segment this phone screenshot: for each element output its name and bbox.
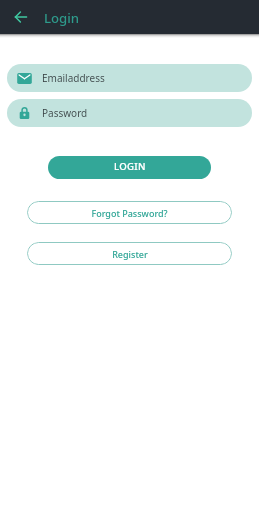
button[interactable]: Password — [7, 99, 252, 127]
staticText: Emailaddress — [42, 71, 105, 85]
staticText: Password — [42, 106, 88, 120]
staticText: Forgot Password? — [91, 207, 168, 219]
staticText: Register — [112, 248, 148, 260]
button[interactable]: Forgot Password? — [27, 201, 232, 224]
button[interactable]: Emailaddress — [7, 64, 252, 92]
button[interactable]: LOGIN — [48, 156, 211, 179]
staticText: Login — [44, 9, 80, 27]
button[interactable]: Back — [8, 4, 34, 30]
button[interactable]: Register — [27, 242, 232, 265]
staticText: LOGIN — [114, 160, 146, 173]
